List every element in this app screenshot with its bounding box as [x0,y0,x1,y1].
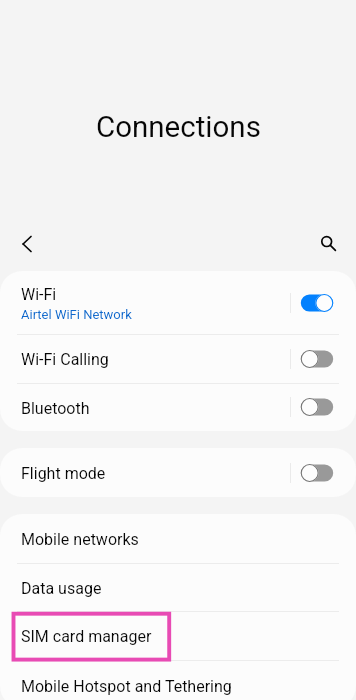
staticText: SIM card manager [21,627,152,646]
button[interactable]: Navigate up [5,221,49,265]
button[interactable]: SIM card manager [0,611,356,660]
button[interactable]: Mobile networks [0,514,356,563]
button[interactable]: Wi-Fi [0,271,356,334]
button[interactable]: Mobile Hotspot and Tethering [0,660,356,700]
staticText: Mobile networks [21,530,139,549]
button[interactable]: Search [305,221,349,265]
staticText: Wi-Fi Calling [21,350,109,369]
button[interactable]: Flight mode [0,448,356,497]
staticText: Bluetooth [21,399,90,418]
button[interactable]: Wi-Fi Calling switch [295,334,339,383]
staticText: Data usage [21,579,102,598]
staticText: Flight mode [21,464,106,483]
staticText: Mobile Hotspot and Tethering [21,677,232,696]
button[interactable]: Bluetooth switch [295,383,339,431]
button[interactable]: Data usage [0,563,356,611]
button[interactable]: Flight mode switch [295,448,339,497]
staticText: Airtel WiFi Network [21,307,132,322]
button[interactable]: Bluetooth [0,383,356,431]
staticText: Wi-Fi [21,285,57,304]
button[interactable]: Wi-Fi Calling [0,334,356,383]
staticText: Connections [96,110,261,145]
button[interactable]: Wi-Fi switch [295,271,339,334]
